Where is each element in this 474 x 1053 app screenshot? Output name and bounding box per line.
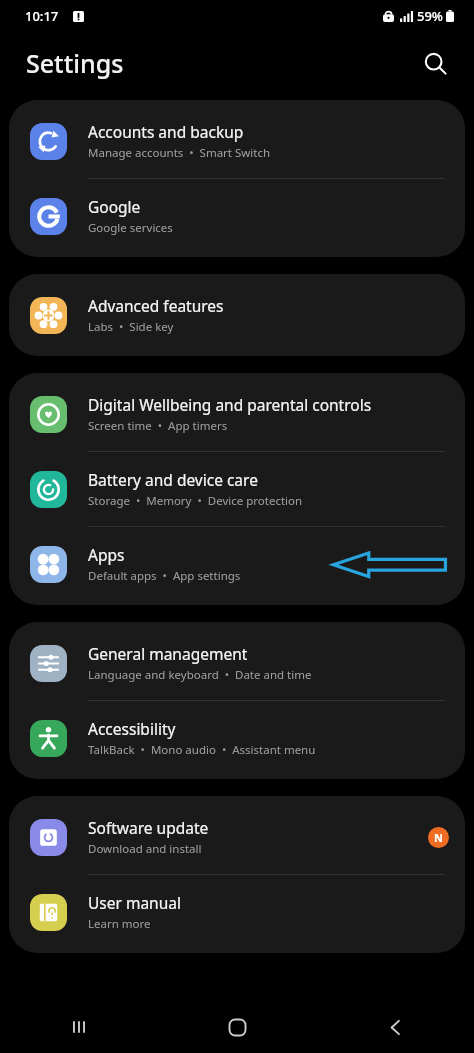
- staticText: TalkBack • Mono audio • Assistant menu: [88, 742, 316, 758]
- staticText: User manual: [88, 892, 181, 913]
- staticText: Download and install: [88, 841, 202, 857]
- staticText: Digital Wellbeing and parental controls: [88, 394, 372, 415]
- staticText: Advanced features: [88, 295, 224, 316]
- staticText: Language and keyboard • Date and time: [88, 667, 312, 683]
- button[interactable]: User manual: [9, 875, 465, 949]
- button[interactable]: Apps: [9, 527, 465, 601]
- staticText: Apps: [88, 544, 125, 565]
- button[interactable]: Accounts and backup: [9, 104, 465, 178]
- staticText: Storage • Memory • Device protection: [88, 493, 303, 509]
- button[interactable]: General management: [9, 626, 465, 700]
- staticText: 59%: [417, 7, 443, 25]
- button[interactable]: Accessibility: [9, 701, 465, 775]
- staticText: Battery and device care: [88, 469, 258, 490]
- staticText: Manage accounts • Smart Switch: [88, 145, 271, 161]
- button[interactable]: Recents: [0, 1001, 158, 1053]
- button[interactable]: Battery and device care: [9, 452, 465, 526]
- staticText: Accounts and backup: [88, 121, 244, 142]
- staticText: Accessibility: [88, 718, 176, 739]
- staticText: Learn more: [88, 916, 151, 932]
- button[interactable]: Google: [9, 179, 465, 253]
- button[interactable]: Software update: [9, 800, 465, 874]
- button[interactable]: Digital Wellbeing and parental controls: [9, 377, 465, 451]
- staticText: Screen time • App timers: [88, 418, 228, 434]
- staticText: Default apps • App settings: [88, 568, 241, 584]
- staticText: Labs • Side key: [88, 319, 174, 335]
- button[interactable]: Back: [316, 1001, 474, 1053]
- staticText: Software update: [88, 817, 209, 838]
- button[interactable]: Search: [412, 40, 458, 86]
- staticText: General management: [88, 643, 248, 664]
- staticText: Settings: [26, 46, 124, 80]
- staticText: Google: [88, 196, 141, 217]
- button[interactable]: Home: [158, 1001, 316, 1053]
- staticText: Google services: [88, 220, 173, 236]
- button[interactable]: Advanced features: [9, 278, 465, 352]
- staticText: 10:17: [25, 7, 59, 25]
- staticText: N: [434, 830, 443, 845]
